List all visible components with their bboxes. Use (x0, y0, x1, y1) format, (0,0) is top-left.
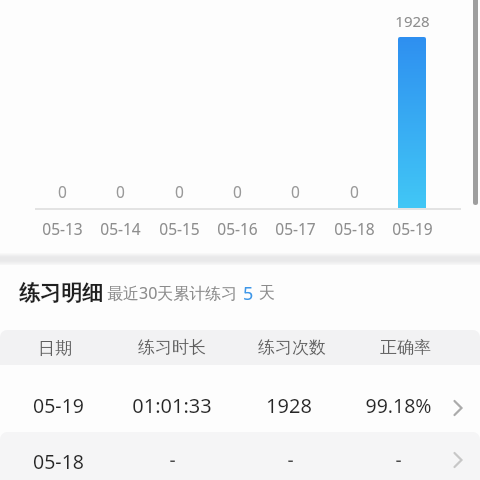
staticText: 练习明细 (19, 280, 103, 306)
staticText: - (287, 447, 294, 473)
staticText: 1928 (266, 392, 312, 419)
staticText: 05-18 (33, 448, 84, 475)
staticText: 0 (233, 181, 242, 202)
staticText: 05-17 (275, 218, 316, 239)
staticText: 05-15 (159, 218, 200, 239)
staticText: 05-19 (33, 392, 84, 419)
staticText: 最近30天累计练习 (107, 282, 238, 304)
staticText: 练习次数 (258, 337, 326, 358)
button[interactable] (0, 432, 480, 480)
staticText: 05-16 (217, 218, 258, 239)
staticText: 0 (291, 181, 300, 202)
button[interactable] (0, 364, 480, 432)
staticText: 0 (116, 181, 125, 202)
staticText: 5 (243, 281, 254, 305)
staticText: 05-14 (100, 218, 141, 239)
staticText: 天 (259, 283, 275, 303)
staticText: 0 (175, 181, 184, 202)
staticText: 练习时长 (138, 337, 206, 358)
staticText: - (395, 447, 402, 473)
staticText: 1928 (395, 11, 430, 31)
staticText: 日期 (38, 338, 72, 359)
staticText: - (169, 447, 176, 473)
staticText: 正确率 (380, 337, 431, 358)
staticText: 0 (58, 181, 67, 202)
staticText: 05-13 (42, 218, 83, 239)
staticText: 99.18% (365, 392, 432, 419)
staticText: 01:01:33 (132, 392, 212, 419)
staticText: 05-19 (392, 218, 433, 239)
staticText: 05-18 (334, 218, 375, 239)
staticText: 0 (350, 181, 359, 202)
